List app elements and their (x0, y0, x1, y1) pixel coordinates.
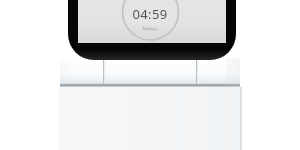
staticText: Testing… (142, 26, 159, 31)
button[interactable]: Smartwatch timer 04:59 (0, 0, 300, 150)
staticText: 04:59 (132, 5, 168, 23)
